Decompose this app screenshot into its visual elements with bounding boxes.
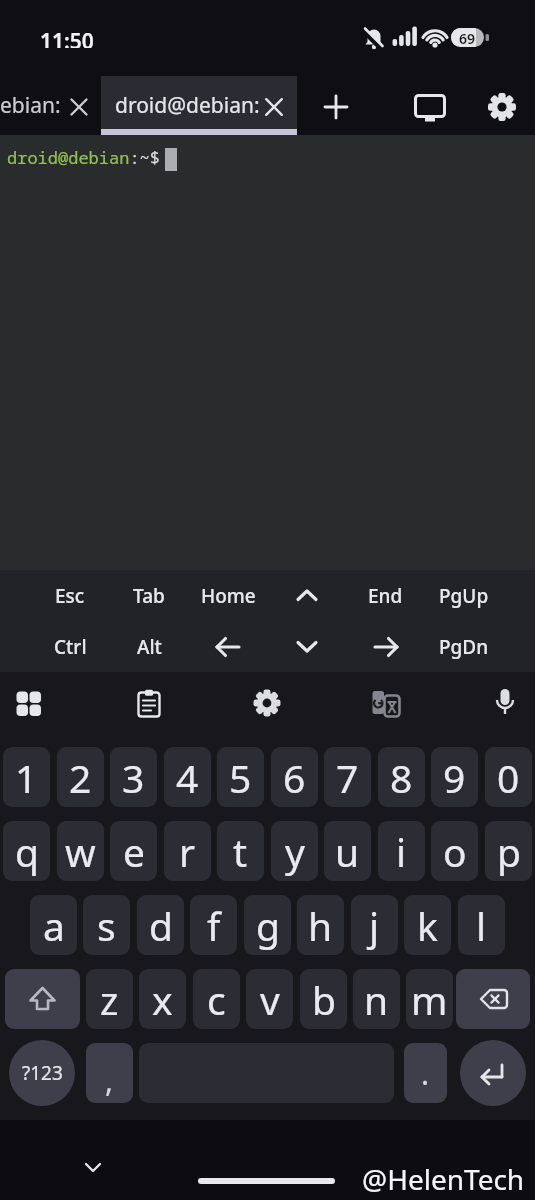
button[interactable]: m (406, 969, 453, 1029)
staticText: 3 (122, 751, 145, 804)
staticText: 7 (336, 751, 359, 804)
staticText: droid@debian:~$ (7, 146, 160, 168)
button[interactable]: x (139, 969, 186, 1029)
button[interactable]: Esc (30, 570, 110, 621)
button[interactable]: Home (188, 570, 268, 621)
staticText: 9 (443, 751, 466, 804)
staticText: Home (201, 583, 256, 609)
staticText: PgUp (439, 583, 489, 609)
button[interactable]: 1 (3, 747, 50, 807)
staticText: 11:50 (40, 27, 94, 48)
staticText: 69 (459, 29, 476, 48)
button[interactable]: q (3, 821, 50, 881)
button[interactable] (263, 96, 285, 118)
button[interactable]: u (324, 821, 371, 881)
staticText: s (97, 899, 116, 952)
button[interactable]: Ctrl (30, 621, 110, 672)
button[interactable] (494, 688, 516, 719)
staticText: End (368, 583, 403, 609)
button[interactable] (16, 691, 42, 717)
button[interactable] (136, 689, 162, 719)
button[interactable]: PgDn (424, 621, 504, 672)
button[interactable] (101, 76, 297, 135)
staticText: 0 (497, 751, 520, 804)
staticText: d (149, 899, 173, 952)
button[interactable] (324, 95, 348, 119)
button[interactable]: Alt (109, 621, 189, 672)
button[interactable] (370, 689, 402, 721)
button[interactable]: k (404, 895, 451, 955)
button[interactable]: g (244, 895, 291, 955)
staticText: Ctrl (54, 634, 87, 660)
button[interactable] (460, 1040, 526, 1106)
button[interactable]: 3 (110, 747, 157, 807)
button[interactable]: 6 (271, 747, 318, 807)
button[interactable]: 7 (324, 747, 371, 807)
staticText: x (152, 973, 173, 1026)
staticText: b (312, 973, 336, 1026)
button[interactable] (86, 1043, 133, 1103)
button[interactable]: z (86, 969, 133, 1029)
staticText: v (260, 973, 280, 1026)
button[interactable]: 0 (485, 747, 532, 807)
button[interactable]: y (271, 821, 318, 881)
button[interactable] (487, 92, 517, 122)
button[interactable] (9, 1040, 75, 1106)
button[interactable]: d (137, 895, 184, 955)
staticText: y (285, 825, 305, 878)
button[interactable] (252, 688, 282, 718)
button[interactable]: f (190, 895, 237, 955)
button[interactable]: n (353, 969, 400, 1029)
button[interactable]: j (351, 895, 398, 955)
button[interactable]: 8 (378, 747, 425, 807)
button[interactable] (456, 969, 530, 1029)
button[interactable]: 2 (57, 747, 104, 807)
button[interactable]: w (57, 821, 104, 881)
button[interactable]: l (458, 895, 505, 955)
button[interactable]: t (217, 821, 264, 881)
staticText: 1 (15, 751, 38, 804)
button[interactable] (0, 76, 100, 135)
button[interactable]: 9 (431, 747, 478, 807)
button[interactable] (267, 570, 347, 621)
staticText: z (100, 973, 119, 1026)
button[interactable]: PgUp (424, 570, 504, 621)
button[interactable] (267, 621, 347, 672)
staticText: Tab (133, 583, 165, 609)
staticText: 8 (390, 751, 413, 804)
button[interactable]: 4 (164, 747, 211, 807)
button[interactable]: v (246, 969, 293, 1029)
button[interactable]: p (485, 821, 532, 881)
button[interactable]: h (297, 895, 344, 955)
staticText: Esc (55, 583, 85, 609)
staticText: a (43, 899, 65, 952)
button[interactable] (346, 621, 426, 672)
button[interactable]: c (193, 969, 240, 1029)
button[interactable] (188, 621, 268, 672)
button[interactable]: b (300, 969, 347, 1029)
button[interactable] (414, 93, 446, 123)
staticText: 2 (69, 751, 92, 804)
staticText: . (421, 1053, 430, 1094)
button[interactable]: Tab (109, 570, 189, 621)
button[interactable]: i (378, 821, 425, 881)
button[interactable]: End (345, 570, 425, 621)
staticText: e (123, 825, 145, 878)
button[interactable] (80, 1156, 106, 1180)
staticText: o (443, 825, 467, 878)
staticText: p (497, 825, 521, 878)
button[interactable]: s (83, 895, 130, 955)
button[interactable]: o (431, 821, 478, 881)
staticText: PgDn (439, 634, 489, 660)
staticText: n (364, 973, 389, 1026)
staticText: ebian: (0, 91, 61, 120)
button[interactable]: e (110, 821, 157, 881)
button[interactable] (5, 969, 80, 1029)
button[interactable]: a (30, 895, 77, 955)
button[interactable]: r (164, 821, 211, 881)
staticText: g (256, 899, 280, 952)
button[interactable] (68, 96, 90, 118)
button[interactable] (404, 1043, 447, 1103)
button[interactable]: 5 (217, 747, 264, 807)
